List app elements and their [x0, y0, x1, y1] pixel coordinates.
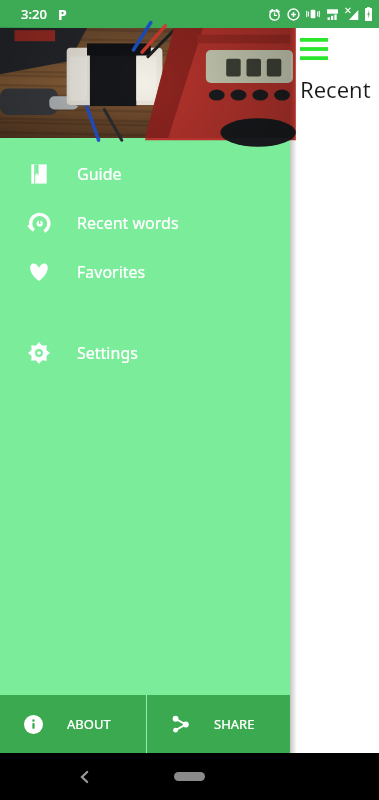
staticText: Recent words	[300, 74, 379, 104]
staticText: P	[58, 5, 67, 24]
button[interactable]: SHARE	[147, 695, 290, 753]
button[interactable]: Settings	[0, 328, 290, 377]
staticText: Guide	[77, 163, 122, 185]
button[interactable]: Open navigation drawer	[300, 38, 328, 60]
button[interactable]: Recent words	[0, 198, 290, 247]
staticText: Recent words	[77, 212, 179, 234]
staticText: Settings	[77, 342, 138, 364]
button[interactable]: Guide	[0, 149, 290, 198]
staticText: Favorites	[77, 261, 146, 283]
button[interactable]: Favorites	[0, 247, 290, 296]
staticText: ABOUT	[67, 715, 111, 733]
staticText: 3:20	[21, 5, 47, 23]
staticText: SHARE	[214, 715, 255, 733]
button[interactable]: ABOUT	[0, 695, 146, 753]
